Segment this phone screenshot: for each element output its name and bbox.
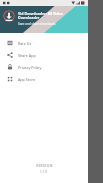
staticText: VERSION <box>36 163 53 168</box>
staticText: 1.1.0 <box>40 170 48 174</box>
staticText: Share App <box>18 53 36 58</box>
staticText: App Store <box>18 77 35 82</box>
staticText: Rate Us <box>18 41 32 46</box>
button[interactable]: Privacy Policy <box>0 61 88 73</box>
button[interactable]: Rate Us <box>0 37 88 49</box>
button[interactable]: App Store <box>0 73 88 85</box>
staticText: Save and share downloads <box>18 22 56 26</box>
staticText: Vid Downloader: All Video Downloader <box>18 11 85 21</box>
button[interactable]: Share App <box>0 49 88 61</box>
button[interactable]: Vid Downloader: All Video Downloader <box>0 6 88 33</box>
staticText: Privacy Policy <box>18 65 42 70</box>
